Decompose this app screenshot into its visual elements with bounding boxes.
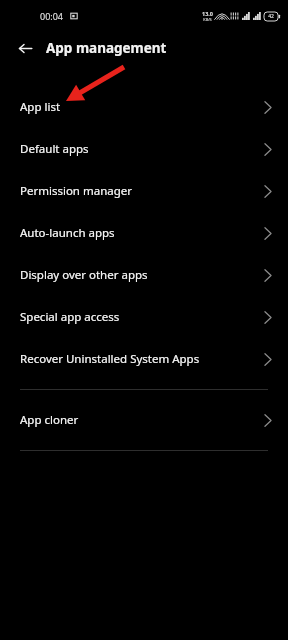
staticText: Auto-launch apps <box>20 225 264 241</box>
staticText: Permission manager <box>20 183 264 199</box>
staticText: Default apps <box>20 141 264 157</box>
staticText: KB/S <box>203 17 212 22</box>
staticText: App management <box>46 39 167 57</box>
staticText: 42 <box>268 13 274 20</box>
staticText: App list <box>20 99 264 115</box>
button[interactable]: Special app access <box>0 296 288 338</box>
staticText: Special app access <box>20 309 264 325</box>
button[interactable]: Display over other apps <box>0 254 288 296</box>
button[interactable]: Recover Uninstalled System Apps <box>0 338 288 380</box>
button[interactable]: Back <box>10 33 40 63</box>
staticText: 13.0 <box>202 10 213 17</box>
staticText: 00:04 <box>40 10 64 22</box>
staticText: App cloner <box>20 412 264 428</box>
button[interactable]: App cloner <box>0 399 288 441</box>
button[interactable]: App list <box>0 86 288 128</box>
staticText: Recover Uninstalled System Apps <box>20 351 264 367</box>
staticText: Display over other apps <box>20 267 264 283</box>
button[interactable]: Permission manager <box>0 170 288 212</box>
button[interactable]: Default apps <box>0 128 288 170</box>
button[interactable]: Auto-launch apps <box>0 212 288 254</box>
